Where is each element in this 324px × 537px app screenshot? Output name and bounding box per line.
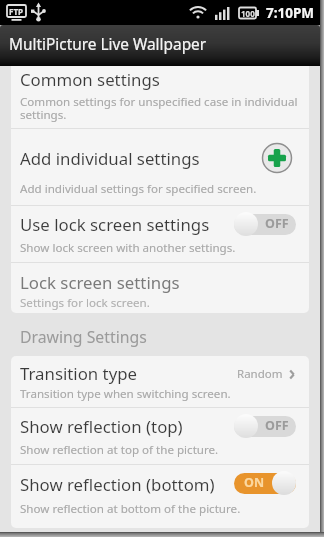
button[interactable]: Add individual settings xyxy=(11,129,309,205)
staticText: OFF xyxy=(265,215,289,232)
button[interactable]: Transition type xyxy=(11,356,309,407)
staticText: FTP xyxy=(9,6,23,17)
button[interactable]: Show reflection (top) xyxy=(11,408,309,464)
staticText: Random xyxy=(237,366,283,382)
staticText: Add individual settings xyxy=(20,147,200,170)
staticText: Show reflection (bottom) xyxy=(20,473,215,496)
staticText: Show reflection at bottom of the picture… xyxy=(20,501,241,517)
staticText: Drawing Settings xyxy=(20,326,147,348)
staticText: 100 xyxy=(241,8,255,19)
staticText: Transition type xyxy=(20,362,138,385)
button[interactable]: Drawing Settings xyxy=(0,313,320,356)
staticText: 7:10PM xyxy=(266,4,315,22)
staticText: Common settings for unspecified case in … xyxy=(20,94,298,123)
button[interactable]: Lock screen settings xyxy=(11,263,309,313)
staticText: Show reflection at top of the picture. xyxy=(20,442,219,458)
staticText: Show reflection (top) xyxy=(20,415,183,438)
button[interactable]: Add xyxy=(261,142,293,174)
button[interactable]: Use lock screen settings xyxy=(11,206,309,262)
staticText: Transition type when switching screen. xyxy=(20,386,231,402)
staticText: Show lock screen with another settings. xyxy=(20,240,236,256)
staticText: Use lock screen settings xyxy=(20,213,210,236)
button[interactable]: Off xyxy=(234,212,296,236)
staticText: MultiPicture Live Wallpaper xyxy=(9,34,207,55)
button[interactable]: Off xyxy=(234,414,296,438)
button[interactable]: Show reflection (bottom) xyxy=(11,465,309,528)
button[interactable]: On xyxy=(234,471,296,495)
staticText: ON xyxy=(244,474,265,491)
staticText: Lock screen settings xyxy=(20,271,180,294)
staticText: Common settings xyxy=(20,68,160,91)
staticText: Add individual settings for specified sc… xyxy=(20,181,257,197)
staticText: Settings for lock screen. xyxy=(20,295,150,311)
staticText: OFF xyxy=(265,417,289,434)
button[interactable]: Common settings xyxy=(11,66,309,128)
